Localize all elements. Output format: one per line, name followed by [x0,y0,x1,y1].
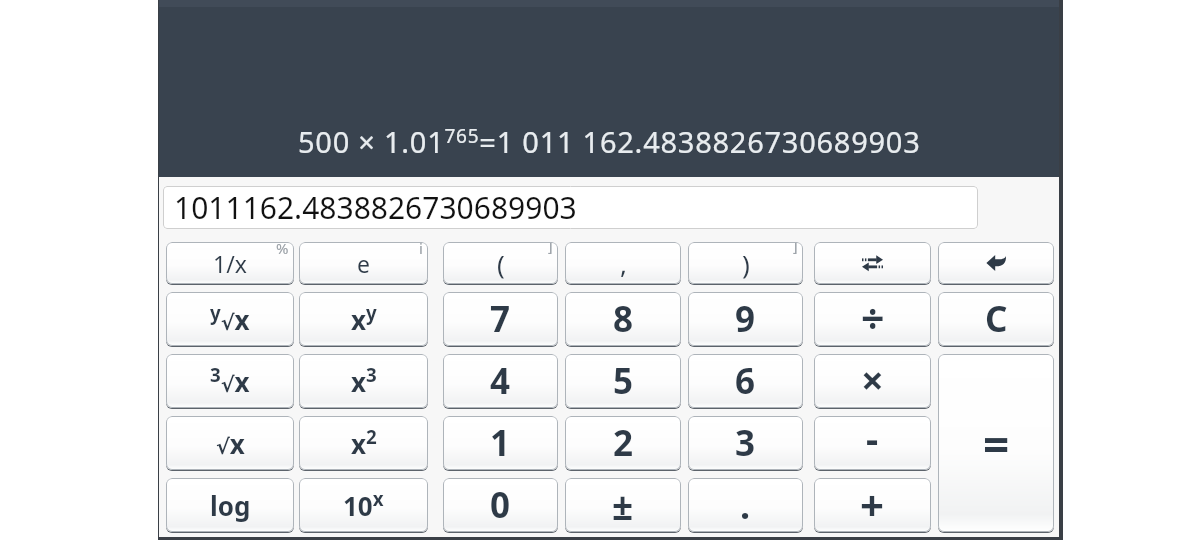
button[interactable]: 9 [688,292,803,346]
button[interactable]: Swap operands [814,242,931,284]
staticText: i [419,242,423,258]
staticText: x2 [351,424,377,462]
button[interactable]: × [814,354,931,408]
button[interactable]: C [938,292,1054,346]
staticText: ÷ [861,292,885,343]
staticText: = [983,413,1010,476]
staticText: 500 × 1.01765=1 011 162.4838826730689903 [298,122,921,161]
staticText: . [740,481,751,530]
button[interactable]: ( [443,242,558,284]
button[interactable]: √x [166,416,294,470]
staticText: log [210,488,251,523]
staticText: 7 [490,295,511,343]
button[interactable]: 1/x [166,242,294,284]
button[interactable]: 1011162.4838826730689903 [163,186,978,229]
staticText: 1 [490,419,511,467]
staticText: 8 [613,295,634,343]
staticText: 3√x [210,362,250,400]
staticText: 1/x [213,248,247,279]
staticText: % [276,242,289,258]
button[interactable]: ) [688,242,803,284]
button[interactable]: 0 [443,478,558,532]
staticText: x3 [351,362,377,400]
button[interactable]: 1 [443,416,558,470]
button[interactable]: 7 [443,292,558,346]
button[interactable]: 3 [688,416,803,470]
button[interactable]: ÷ [814,292,931,346]
staticText: 1011162.4838826730689903 [174,187,577,228]
staticText: × [861,354,884,406]
staticText: ⌋ [792,242,798,255]
staticText: 9 [735,295,756,343]
button[interactable]: , [565,242,681,284]
staticText: 6 [735,357,756,405]
button[interactable]: x2 [299,416,428,470]
staticText: C [985,295,1008,343]
staticText: ( [497,246,505,281]
staticText: 2 [613,419,634,467]
staticText: 5 [613,357,634,405]
staticText: √x [216,426,245,461]
button[interactable]: Enter [938,242,1054,284]
staticText: - [866,416,879,464]
button[interactable]: - [814,416,931,470]
button[interactable]: 4 [443,354,558,408]
button[interactable]: 8 [565,292,681,346]
button[interactable]: 2 [565,416,681,470]
staticText: ) [742,246,750,281]
button[interactable]: y√x [166,292,294,346]
staticText: 10x [343,486,384,524]
button[interactable]: 5 [565,354,681,408]
staticText: ⌋ [547,242,553,255]
button[interactable]: 6 [688,354,803,408]
button[interactable]: e [299,242,428,284]
staticText: e [357,248,370,279]
staticText: xy [351,300,377,338]
button[interactable]: x3 [299,354,428,408]
button[interactable]: xy [299,292,428,346]
button[interactable]: ± [565,478,681,532]
staticText: 0 [490,481,511,529]
staticText: , [620,246,627,281]
staticText: y√x [210,300,250,338]
button[interactable]: + [814,478,931,532]
button[interactable]: = [938,354,1054,532]
button[interactable]: 10x [299,478,428,532]
staticText: 3 [735,419,756,467]
staticText: 4 [490,357,511,405]
staticText: + [860,478,885,530]
button[interactable]: log [166,478,294,532]
button[interactable]: 3√x [166,354,294,408]
staticText: ± [612,480,634,530]
button[interactable]: . [688,478,803,532]
